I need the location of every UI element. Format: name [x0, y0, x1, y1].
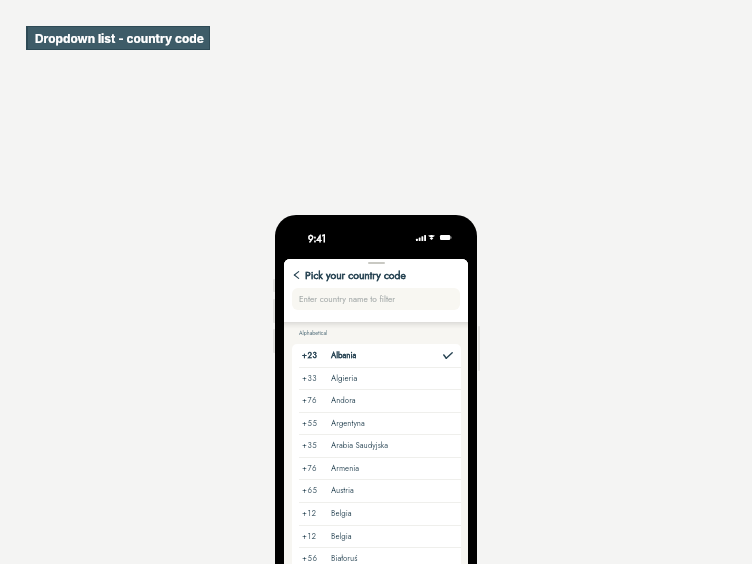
- staticText: +23: [302, 350, 318, 361]
- button[interactable]: +55: [292, 412, 461, 435]
- staticText: Pick your country code: [305, 268, 406, 283]
- staticText: Belgia: [331, 508, 352, 519]
- staticText: +12: [302, 531, 317, 542]
- staticText: Enter country name to filter: [299, 293, 396, 305]
- button[interactable]: +33: [292, 367, 461, 390]
- button[interactable]: +12: [292, 502, 461, 525]
- button[interactable]: Enter country name to filter: [292, 288, 460, 310]
- staticText: +65: [302, 485, 318, 496]
- staticText: Albania: [331, 350, 357, 361]
- staticText: +76: [302, 463, 318, 474]
- staticText: Arabia Saudyjska: [331, 440, 389, 451]
- other: Battery: [440, 235, 452, 240]
- staticText: +56: [302, 553, 318, 564]
- button[interactable]: +23: [292, 344, 461, 367]
- staticText: +23: [302, 350, 318, 361]
- staticText: Austria: [331, 485, 354, 496]
- staticText: +55: [302, 418, 318, 429]
- staticText: Białoruś: [331, 553, 358, 564]
- staticText: Pick your country code: [305, 268, 406, 283]
- staticText: Armenia: [331, 463, 360, 474]
- staticText: Algieria: [331, 373, 358, 384]
- staticText: Albania: [331, 350, 357, 361]
- button[interactable]: Back: [290, 267, 303, 284]
- staticText: +12: [302, 508, 317, 519]
- other: Cellular signal: [416, 235, 426, 241]
- staticText: Belgia: [331, 531, 352, 542]
- button[interactable]: Dropdown list - country code: [28, 27, 209, 49]
- staticText: Dropdown list - country code: [35, 31, 204, 45]
- button[interactable]: +65: [292, 479, 461, 502]
- staticText: +33: [302, 373, 318, 384]
- staticText: +76: [302, 395, 318, 406]
- staticText: +35: [302, 440, 318, 451]
- staticText: Alphabetical: [299, 329, 328, 337]
- staticText: Argentyna: [331, 418, 365, 429]
- staticText: 9:41: [308, 232, 327, 246]
- other: Selected: [443, 352, 453, 359]
- button[interactable]: +35: [292, 434, 461, 457]
- button[interactable]: +12: [292, 525, 461, 548]
- button[interactable]: +56: [292, 547, 461, 564]
- other: Wi-Fi: [428, 235, 435, 241]
- staticText: Andora: [331, 395, 356, 406]
- button[interactable]: +76: [292, 457, 461, 480]
- button[interactable]: +76: [292, 389, 461, 412]
